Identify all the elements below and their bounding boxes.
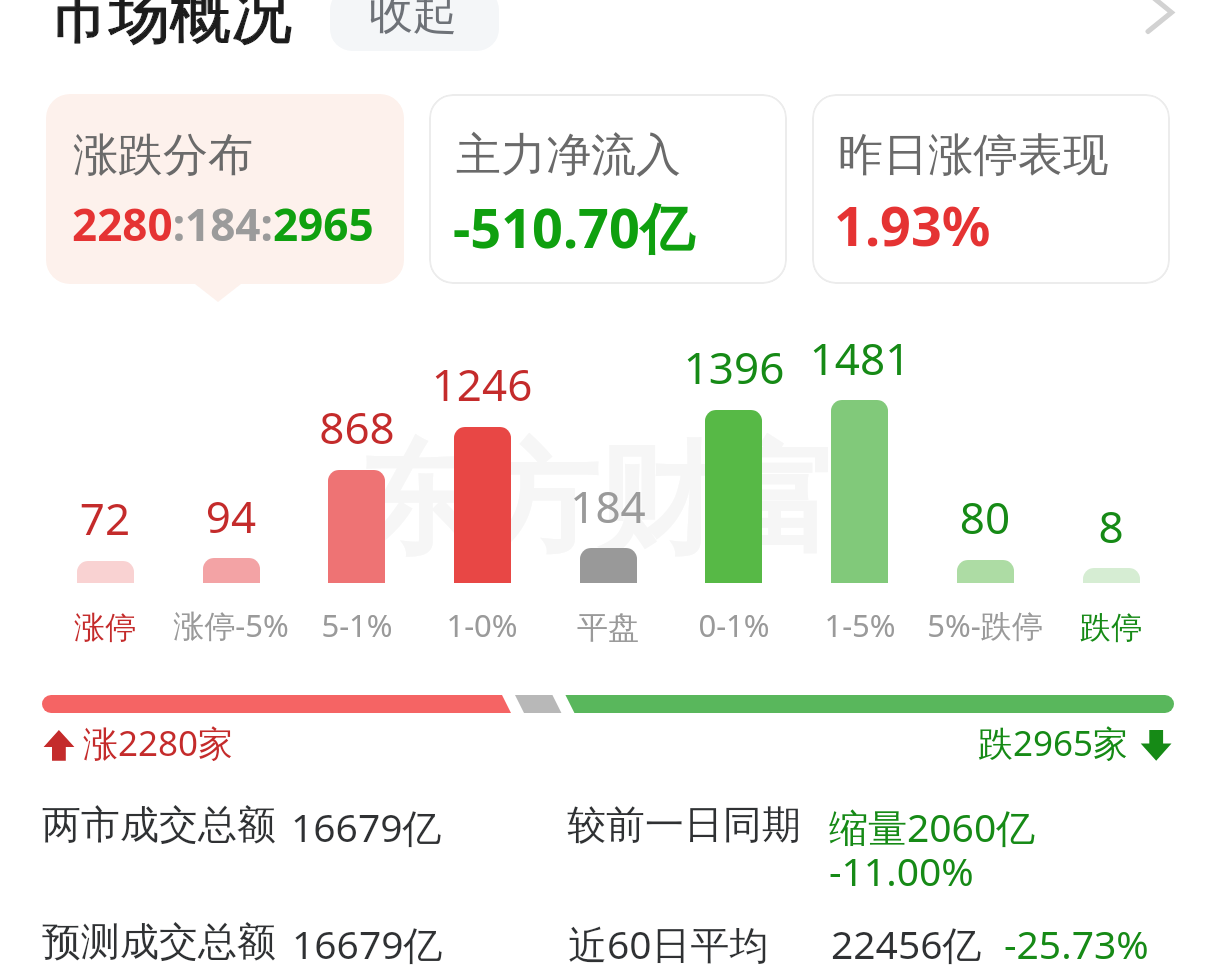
staticText: 昨日涨停表现 bbox=[838, 127, 1108, 184]
staticText: 两市成交总额 bbox=[42, 800, 276, 849]
staticText: 72 bbox=[5, 488, 205, 548]
staticText: 跌2965家 bbox=[978, 719, 1129, 763]
staticText: 2280:184:2965 bbox=[72, 194, 374, 254]
button[interactable]: 主力净流入 bbox=[429, 94, 787, 284]
staticText: 近60日平均 bbox=[568, 917, 769, 967]
staticText: 184 bbox=[508, 476, 708, 536]
staticText: 5-1% bbox=[257, 604, 457, 646]
staticText: 涨跌分布 bbox=[73, 127, 253, 184]
button[interactable]: 涨跌分布 bbox=[46, 94, 404, 302]
staticText: 涨2280家 bbox=[83, 719, 234, 763]
staticText: -25.73% bbox=[1004, 917, 1149, 967]
staticText: 8 bbox=[1011, 496, 1211, 556]
staticText: 主力净流入 bbox=[456, 127, 681, 184]
staticText: 市场概况 bbox=[48, 0, 292, 54]
staticText: 东方财富 bbox=[358, 425, 838, 576]
staticText: 1246 bbox=[382, 354, 582, 414]
button[interactable]: 查看详情 bbox=[1130, 0, 1200, 50]
staticText: 868 bbox=[257, 397, 457, 457]
staticText: 22456亿 bbox=[831, 917, 982, 967]
staticText: -510.70亿 bbox=[453, 190, 694, 264]
staticText: 市场概况 bbox=[48, 0, 292, 54]
staticText: 平盘 bbox=[508, 608, 708, 647]
staticText: -11.00% bbox=[829, 844, 974, 897]
staticText: 1-5% bbox=[760, 604, 960, 646]
staticText: 0-1% bbox=[634, 604, 834, 646]
staticText: 1396 bbox=[634, 337, 834, 397]
staticText: 缩量2060亿 bbox=[829, 800, 1036, 853]
button[interactable]: 昨日涨停表现 bbox=[812, 94, 1170, 284]
button[interactable]: 收起 bbox=[330, 0, 499, 51]
staticText: 94 bbox=[131, 486, 331, 546]
staticText: 1-0% bbox=[382, 604, 582, 646]
staticText: 跌停 bbox=[1011, 608, 1211, 647]
staticText: 1481 bbox=[760, 328, 960, 388]
staticText: 16679亿 bbox=[292, 917, 443, 967]
staticText: 涨停 bbox=[5, 608, 205, 647]
staticText: 预测成交总额 bbox=[42, 917, 276, 966]
staticText: 涨停-5% bbox=[131, 604, 331, 646]
staticText: 16679亿 bbox=[291, 800, 442, 853]
staticText: 较前一日同期 bbox=[567, 800, 801, 849]
staticText: 80 bbox=[885, 487, 1085, 547]
staticText: 5%-跌停 bbox=[885, 604, 1085, 646]
staticText: 收起 bbox=[369, 0, 457, 41]
button[interactable]: 市场概况 bbox=[40, 0, 316, 58]
staticText: 1.93% bbox=[834, 188, 991, 262]
